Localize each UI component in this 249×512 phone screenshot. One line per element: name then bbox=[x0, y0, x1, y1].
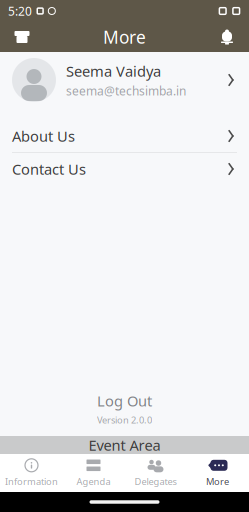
button[interactable]: Information bbox=[0, 454, 62, 492]
button[interactable]: Seema Vaidya bbox=[0, 52, 249, 108]
staticText: About Us bbox=[12, 126, 75, 146]
button[interactable]: More bbox=[186, 454, 248, 492]
staticText: Delegates bbox=[134, 475, 176, 488]
staticText: More bbox=[206, 475, 229, 488]
button[interactable]: Delegates bbox=[124, 454, 186, 492]
button[interactable]: Notifications bbox=[207, 22, 247, 52]
staticText: Log Out bbox=[97, 391, 152, 411]
button[interactable]: Home bbox=[2, 22, 42, 52]
staticText: Agenda bbox=[76, 475, 110, 488]
staticText: 5:20 bbox=[8, 3, 32, 19]
staticText: Contact Us bbox=[12, 159, 86, 179]
staticText: More bbox=[103, 25, 146, 48]
staticText: Seema Vaidya bbox=[66, 61, 161, 81]
staticText: Event Area bbox=[88, 435, 160, 455]
staticText: Version 2.0.0 bbox=[97, 414, 152, 426]
staticText: Information bbox=[5, 475, 58, 488]
staticText: seema@techsimba.in bbox=[66, 83, 186, 99]
button[interactable]: About Us bbox=[0, 120, 249, 152]
button[interactable]: Log Out bbox=[77, 389, 172, 413]
button[interactable]: Agenda bbox=[62, 454, 124, 492]
button[interactable]: Contact Us bbox=[0, 153, 249, 185]
